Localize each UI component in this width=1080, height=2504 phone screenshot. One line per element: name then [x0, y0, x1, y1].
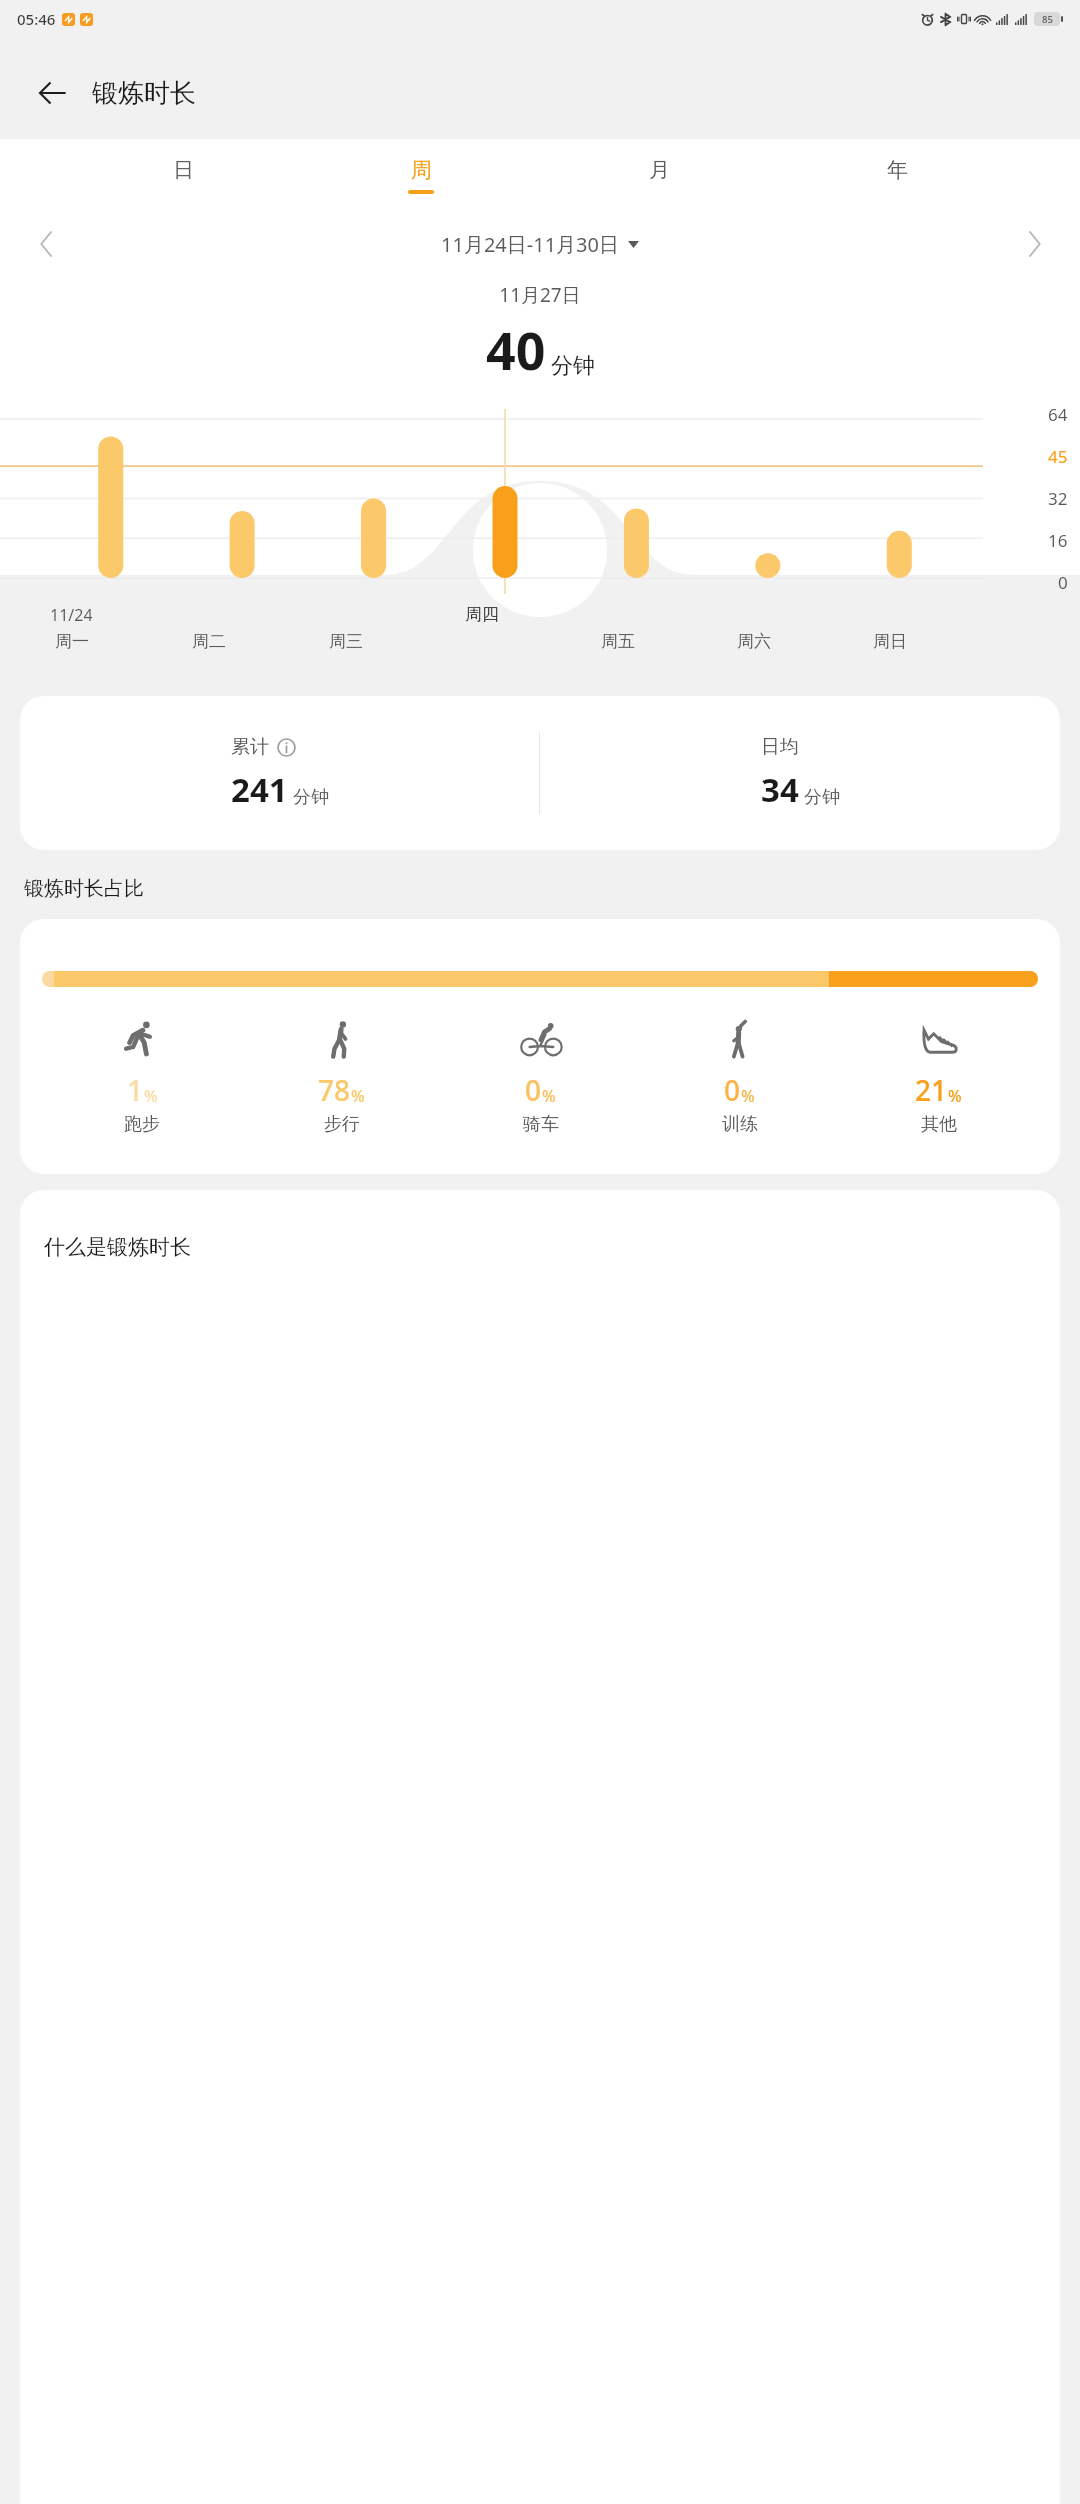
staticText: 累计	[231, 735, 269, 759]
staticText: 周三	[329, 631, 363, 652]
staticText: 周	[411, 157, 432, 183]
staticText: 21	[915, 1071, 948, 1109]
staticText: 其他	[921, 1113, 957, 1136]
button[interactable]: 0	[441, 1017, 640, 1136]
staticText: 64	[1048, 403, 1068, 426]
staticText: 85	[1042, 13, 1053, 26]
staticText: 训练	[722, 1113, 758, 1136]
staticText: %	[351, 1085, 365, 1107]
staticText: 周二	[192, 631, 226, 652]
staticText: %	[948, 1085, 962, 1107]
staticText: 11月24日-11月30日	[441, 231, 619, 258]
staticText: 40	[486, 314, 546, 385]
staticText: 241	[231, 767, 288, 812]
staticText: 月	[649, 157, 670, 183]
button[interactable]: 日	[160, 151, 206, 200]
staticText: 34	[761, 767, 799, 812]
button[interactable]: 什么是锻炼时长	[20, 1190, 1060, 2504]
staticText: 骑车	[523, 1113, 559, 1136]
staticText: 日	[173, 157, 194, 183]
staticText: 78	[318, 1071, 351, 1109]
button[interactable]: 返回	[24, 65, 80, 121]
staticText: 0	[1058, 571, 1068, 594]
staticText: 周四	[465, 604, 499, 625]
button[interactable]: 1	[20, 919, 1060, 1174]
button[interactable]: 年	[874, 151, 920, 200]
staticText: %	[741, 1085, 755, 1107]
other: 说明	[277, 738, 296, 757]
staticText: 什么是锻炼时长	[44, 1234, 191, 1260]
staticText: 周日	[873, 631, 907, 652]
button[interactable]: 上一周	[22, 220, 70, 268]
staticText: 分钟	[293, 786, 329, 809]
staticText: 1	[127, 1071, 144, 1109]
staticText: 0	[724, 1071, 741, 1109]
staticText: 锻炼时长	[92, 77, 196, 110]
staticText: 跑步	[124, 1113, 160, 1136]
staticText: 16	[1048, 529, 1068, 552]
staticText: %	[542, 1085, 556, 1107]
staticText: %	[144, 1085, 158, 1107]
staticText: 周五	[601, 631, 635, 652]
button[interactable]: 1	[42, 1017, 242, 1136]
button[interactable]: 下一周	[1010, 220, 1058, 268]
staticText: 周六	[737, 631, 771, 652]
staticText: 分钟	[551, 352, 595, 380]
button[interactable]: 0	[640, 1017, 839, 1136]
staticText: 05:46	[17, 9, 56, 29]
button[interactable]: 11月24日-11月30日	[70, 231, 1010, 258]
staticText: 45	[1048, 445, 1068, 468]
button[interactable]: 累计	[20, 696, 1060, 850]
staticText: 步行	[324, 1113, 360, 1136]
button[interactable]: 月	[636, 151, 682, 200]
staticText: 0	[525, 1071, 542, 1109]
staticText: 11月27日	[0, 282, 1080, 308]
staticText: 分钟	[804, 786, 840, 809]
button[interactable]: 周	[398, 151, 444, 200]
button[interactable]: 78	[242, 1017, 441, 1136]
button[interactable]: 21	[839, 1017, 1038, 1136]
staticText: 年	[887, 157, 908, 183]
staticText: 32	[1048, 487, 1068, 510]
staticText: 11/24	[50, 604, 93, 626]
staticText: 锻炼时长占比	[24, 876, 144, 901]
staticText: 日均	[761, 735, 799, 759]
staticText: 周一	[55, 631, 89, 652]
